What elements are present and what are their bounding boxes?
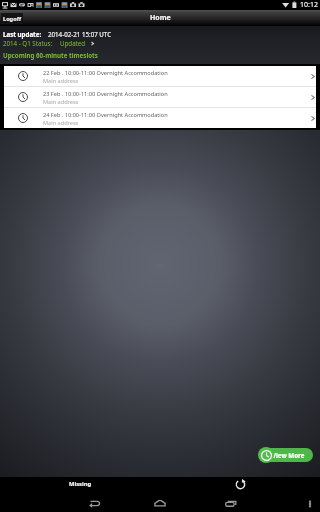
button[interactable]: Back (80, 492, 110, 512)
button[interactable]: View More (259, 448, 313, 462)
staticText: 23 Feb . 10:00-11:00 Overnight Accommoda… (43, 90, 168, 98)
button[interactable]: 23 Feb . 10:00-11:00 Overnight Accommoda… (4, 87, 316, 107)
button[interactable]: Refresh (229, 478, 252, 491)
button[interactable]: More options (299, 492, 320, 512)
staticText: 10:12 (300, 0, 318, 10)
staticText: 22 Feb . 10:00-11:00 Overnight Accommoda… (43, 69, 168, 77)
staticText: Logoff (3, 15, 21, 23)
staticText: Home (150, 13, 171, 23)
staticText: 2014-02-21 15:07 UTC (48, 30, 112, 38)
staticText: Main address (43, 77, 79, 85)
button[interactable]: 2014 - Q1 Status: (3, 39, 99, 47)
button[interactable]: 22 Feb . 10:00-11:00 Overnight Accommoda… (4, 66, 316, 86)
button[interactable]: Home (145, 492, 175, 512)
staticText: Missing (69, 480, 92, 487)
button[interactable]: Logoff (1, 13, 23, 24)
staticText: Last update: (3, 30, 42, 38)
staticText: Updated (60, 39, 86, 47)
staticText: 2014 - Q1 Status: (3, 39, 53, 47)
button[interactable]: Recent apps (216, 492, 246, 512)
button[interactable]: 24 Feb . 10:00-11:00 Overnight Accommoda… (4, 108, 316, 128)
staticText: Main address (43, 119, 79, 127)
staticText: Main address (43, 98, 79, 106)
button[interactable]: Missing (59, 477, 102, 490)
staticText: 24 Feb . 10:00-11:00 Overnight Accommoda… (43, 111, 168, 119)
staticText: View More (272, 451, 305, 459)
staticText: Upcoming 60-minute timeslots (3, 51, 98, 59)
